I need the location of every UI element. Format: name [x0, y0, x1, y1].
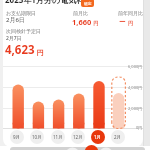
staticText: 次回検針予定日 [6, 28, 41, 34]
staticText: お支払期限日 [6, 10, 37, 16]
staticText: 確定 [84, 1, 92, 6]
button[interactable]: 11月 [51, 130, 65, 144]
button[interactable]: 2月 [111, 130, 125, 144]
staticText: 前年同月比 [118, 10, 143, 16]
staticText: 1月 [94, 134, 102, 140]
staticText: ー [119, 17, 128, 26]
staticText: 4,623 [5, 42, 35, 58]
staticText: 12月 [73, 134, 83, 140]
staticText: 円 [35, 48, 44, 58]
button[interactable] [3, 0, 143, 147]
staticText: 2月 [114, 134, 122, 140]
staticText: 10月 [32, 134, 42, 140]
staticText: 11月 [53, 134, 63, 140]
staticText: 1,660 [72, 17, 92, 27]
staticText: 9月 [13, 134, 21, 140]
staticText: 2023年1月分の電気料金 [5, 0, 93, 5]
staticText: 円 [128, 20, 133, 26]
button[interactable]: 9月 [10, 130, 24, 144]
staticText: 円 [92, 20, 99, 27]
staticText: 2月6日 [6, 16, 25, 24]
button[interactable]: 10月 [30, 130, 44, 144]
button[interactable]: 確定 [81, 0, 94, 7]
staticText: 0円 [136, 125, 143, 130]
staticText: 6,000円 [128, 64, 143, 69]
staticText: 4,000円 [128, 85, 143, 90]
staticText: 2月7日 [6, 35, 22, 42]
button[interactable]: 12月 [71, 130, 85, 144]
staticText: 2,000円 [128, 106, 143, 111]
staticText: 前月比 [73, 10, 88, 16]
button[interactable]: 1月 [91, 130, 105, 144]
